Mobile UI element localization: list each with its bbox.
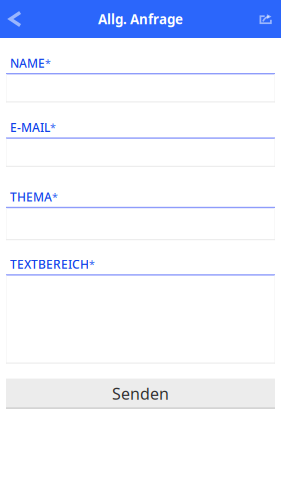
staticText: Allg. Anfrage <box>98 10 183 28</box>
button[interactable]: Share <box>251 0 281 38</box>
button[interactable]: Senden <box>6 379 275 409</box>
staticText: * <box>45 56 51 70</box>
staticText: THEMA <box>10 189 52 205</box>
button[interactable]: Back <box>0 0 30 38</box>
staticText: * <box>50 120 56 134</box>
staticText: * <box>89 257 95 271</box>
staticText: * <box>52 190 58 204</box>
staticText: NAME <box>10 55 45 71</box>
staticText: E-MAIL <box>10 119 50 135</box>
staticText: Senden <box>112 383 169 404</box>
staticText: TEXTBEREICH <box>10 256 89 272</box>
